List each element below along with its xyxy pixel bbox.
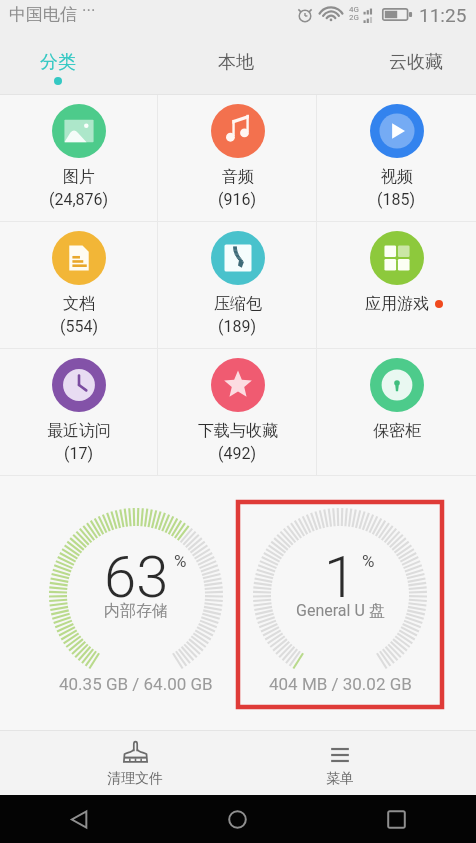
staticText: 下载与收藏: [198, 421, 278, 441]
staticText: 音频: [222, 167, 254, 187]
staticText: 最近访问: [47, 421, 111, 441]
staticText: 图片: [63, 167, 95, 187]
staticText: 云收藏: [389, 51, 443, 74]
staticText: 11:25: [419, 4, 467, 26]
staticText: (916): [218, 190, 257, 209]
button[interactable]: 下载与收藏: [158, 349, 317, 475]
button[interactable]: 压缩包: [158, 222, 317, 348]
button[interactable]: Recents: [317, 795, 476, 843]
button[interactable]: 音频: [158, 95, 317, 221]
staticText: 中国电信: [9, 4, 77, 25]
staticText: 63: [104, 543, 169, 611]
button[interactable]: 保密柜: [317, 349, 476, 475]
staticText: 菜单: [326, 770, 354, 788]
staticText: (492): [218, 444, 257, 463]
staticText: (17): [64, 444, 94, 463]
button[interactable]: 应用游戏: [317, 222, 476, 348]
staticText: 文档: [63, 294, 95, 314]
button[interactable]: 最近访问: [0, 349, 158, 475]
staticText: (554): [60, 317, 99, 336]
button[interactable]: 本地: [178, 36, 294, 94]
staticText: %: [362, 551, 375, 571]
staticText: 视频: [381, 167, 413, 187]
button[interactable]: 63: [32, 500, 240, 709]
staticText: %: [174, 551, 187, 571]
button[interactable]: 视频: [317, 95, 476, 221]
staticText: 分类: [40, 51, 76, 74]
button[interactable]: 图片: [0, 95, 158, 221]
staticText: General U 盘: [296, 601, 385, 621]
staticText: 保密柜: [373, 421, 421, 441]
staticText: (185): [377, 190, 416, 209]
staticText: 404 MB / 30.02 GB: [269, 674, 412, 694]
button[interactable]: 菜单: [280, 731, 400, 795]
staticText: 40.35 GB / 64.00 GB: [59, 674, 213, 694]
button[interactable]: 清理文件: [75, 731, 195, 795]
staticText: 本地: [218, 51, 254, 74]
button[interactable]: 分类: [0, 36, 116, 94]
button[interactable]: Back: [0, 795, 158, 843]
button[interactable]: Home: [158, 795, 317, 843]
staticText: 1: [324, 543, 357, 611]
button[interactable]: 云收藏: [358, 36, 474, 94]
staticText: ···: [82, 0, 96, 20]
staticText: 2G: [349, 13, 359, 22]
staticText: 4G: [349, 5, 359, 14]
staticText: 压缩包: [214, 294, 262, 314]
staticText: 内部存储: [104, 601, 168, 621]
staticText: (24,876): [49, 190, 109, 209]
button[interactable]: 1: [236, 500, 444, 709]
staticText: (189): [218, 317, 257, 336]
button[interactable]: 文档: [0, 222, 158, 348]
staticText: 应用游戏: [365, 294, 429, 314]
staticText: 清理文件: [107, 770, 163, 788]
